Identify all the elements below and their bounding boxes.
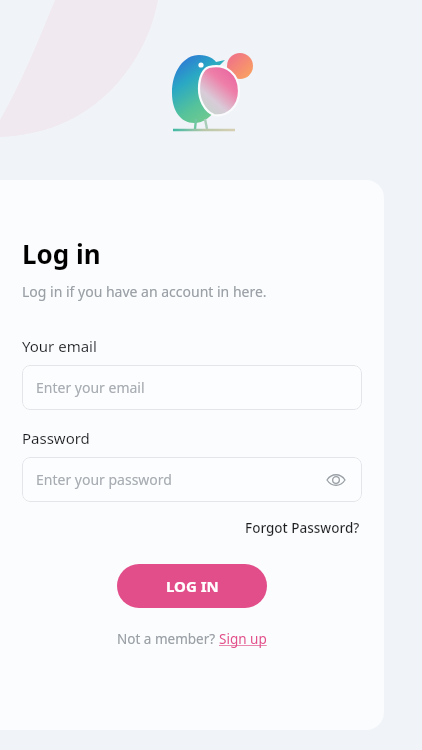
button[interactable]: Enter your password [22, 457, 362, 502]
button[interactable]: Forgot Password? [243, 517, 362, 539]
staticText: Log in [22, 236, 101, 271]
staticText: Forgot Password? [245, 519, 360, 537]
staticText: Log in if you have an account in here. [22, 282, 267, 301]
staticText: Password [22, 428, 90, 448]
button[interactable]: Show password [324, 468, 348, 492]
staticText: LOG IN [166, 576, 219, 596]
staticText: Not a member? [117, 630, 219, 648]
button[interactable]: Sign up [219, 630, 267, 648]
button[interactable]: LOG IN [117, 564, 267, 608]
button[interactable]: Enter your email [22, 365, 362, 410]
staticText: Enter your email [36, 378, 145, 397]
staticText: Enter your password [36, 470, 172, 489]
staticText: Sign up [219, 630, 267, 648]
staticText: Your email [22, 336, 97, 356]
